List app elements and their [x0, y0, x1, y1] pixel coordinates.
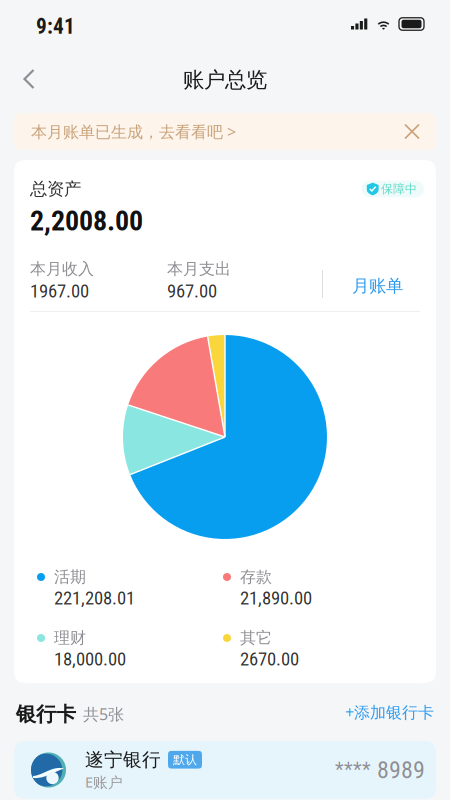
staticText: 9:41 [36, 14, 75, 39]
button[interactable]: 返回 [5, 55, 53, 103]
button[interactable]: 月账单 [323, 260, 424, 305]
staticText: 共5张 [83, 703, 124, 725]
staticText: 月账单 [352, 275, 403, 297]
staticText: +添加银行卡 [345, 701, 434, 723]
staticText: 1967.00 [30, 280, 89, 302]
staticText: 2,2008.00 [30, 205, 143, 237]
staticText: 其它 [240, 628, 272, 648]
staticText: 18,000.00 [54, 648, 126, 670]
staticText: 967.00 [167, 280, 217, 302]
staticText: 本月收入 [30, 259, 94, 279]
staticText: 本月支出 [167, 259, 231, 279]
staticText: 本月账单已生成，去看看吧 > [31, 121, 236, 142]
staticText: **** [335, 758, 371, 782]
button[interactable]: 遂宁银行 [14, 741, 436, 799]
staticText: 保障中 [381, 182, 417, 196]
staticText: 活期 [54, 567, 86, 587]
staticText: 总资产 [30, 178, 81, 200]
staticText: 存款 [240, 567, 272, 587]
staticText: 21,890.00 [240, 587, 312, 609]
staticText: E账户 [85, 772, 123, 792]
staticText: 8989 [377, 756, 425, 784]
staticText: 理财 [54, 628, 86, 648]
staticText: 221,208.01 [54, 587, 135, 609]
staticText: 银行卡 [16, 702, 76, 727]
staticText: 默认 [173, 752, 197, 767]
staticText: 遂宁银行 [85, 748, 161, 771]
staticText: 账户总览 [183, 67, 267, 93]
button[interactable]: 关闭 [398, 117, 426, 145]
button[interactable]: +添加银行卡 [345, 697, 434, 727]
staticText: 2670.00 [240, 648, 299, 670]
